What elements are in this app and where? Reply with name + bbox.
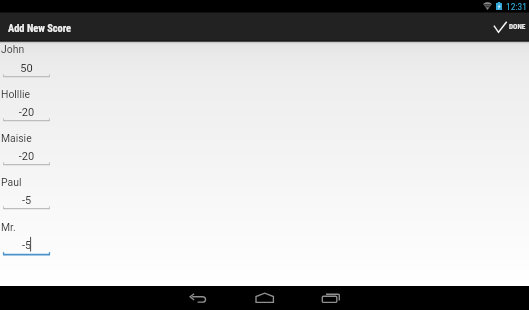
button[interactable]: -5 — [3, 234, 50, 256]
button[interactable]: -5 — [3, 189, 50, 211]
staticText: -5 — [3, 239, 50, 252]
staticText: DONE — [509, 22, 526, 30]
staticText: John — [1, 43, 25, 55]
staticText: Maisie — [1, 132, 32, 144]
button[interactable]: 50 — [3, 57, 50, 79]
button[interactable]: Home — [252, 290, 278, 306]
staticText: -5 — [3, 194, 50, 207]
staticText: Mr. — [1, 221, 16, 233]
staticText: 50 — [3, 62, 50, 75]
button[interactable]: -20 — [3, 101, 50, 123]
staticText: 12:31 — [506, 1, 527, 12]
button[interactable]: Back — [185, 290, 213, 306]
staticText: Add New Score — [8, 22, 72, 34]
button[interactable]: Recent apps — [318, 290, 344, 306]
staticText: -20 — [3, 106, 50, 119]
button[interactable]: DONE — [487, 13, 529, 40]
staticText: Paul — [1, 176, 22, 188]
button[interactable]: -20 — [3, 145, 50, 167]
staticText: Holllie — [1, 88, 30, 100]
staticText: -20 — [3, 150, 50, 163]
